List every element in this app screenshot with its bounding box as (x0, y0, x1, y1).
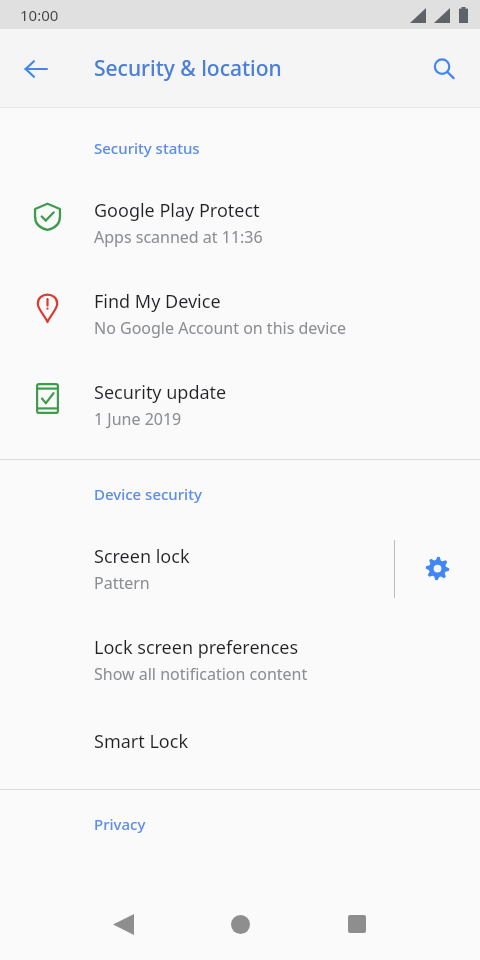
button[interactable]: Screen lock settings (395, 523, 480, 614)
button[interactable]: Search (418, 43, 470, 95)
staticText: Security update (94, 380, 227, 405)
staticText: Apps scanned at 11:36 (94, 226, 263, 248)
staticText: Pattern (94, 572, 150, 594)
button[interactable]: Google Play Protect (0, 177, 480, 268)
button[interactable]: Screen lock (0, 523, 394, 614)
button[interactable]: Smart Lock (0, 705, 480, 777)
button[interactable]: Find My Device (0, 268, 480, 359)
button[interactable]: Home (212, 896, 268, 952)
button[interactable]: Recent apps (329, 896, 385, 952)
button[interactable]: Back (95, 896, 151, 952)
staticText: Security status (94, 138, 200, 158)
button[interactable]: Back (10, 43, 62, 95)
staticText: Show all notification content (94, 663, 308, 685)
staticText: Find My Device (94, 289, 221, 314)
staticText: Smart Lock (94, 729, 188, 754)
button[interactable]: Security update (0, 359, 480, 450)
staticText: Google Play Protect (94, 198, 260, 223)
staticText: Privacy (94, 814, 146, 834)
staticText: Security & location (94, 54, 282, 83)
button[interactable]: Lock screen preferences (0, 614, 480, 705)
staticText: Screen lock (94, 544, 190, 569)
staticText: Lock screen preferences (94, 635, 299, 660)
staticText: 10:00 (20, 5, 59, 25)
staticText: No Google Account on this device (94, 317, 346, 339)
staticText: 1 June 2019 (94, 408, 182, 430)
staticText: Device security (94, 484, 202, 504)
